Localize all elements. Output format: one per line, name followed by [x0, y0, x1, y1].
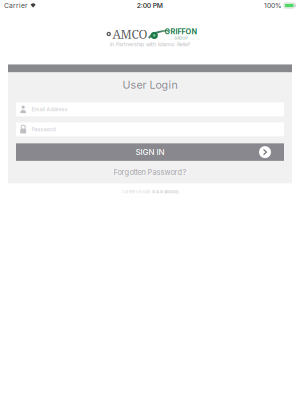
button[interactable]: Forgotten Password? [107, 167, 192, 178]
staticText: 0.0.0 (0000) [152, 189, 178, 194]
staticText: Email Address [31, 106, 67, 113]
staticText: Password [31, 126, 55, 133]
staticText: GROUP [174, 36, 187, 40]
staticText: SIGN IN [135, 147, 164, 157]
button[interactable]: SIGN IN [16, 143, 284, 161]
staticText: Forgotten Password? [113, 168, 186, 177]
staticText: AMCO [112, 26, 147, 42]
staticText: GRIFFON [164, 27, 197, 36]
staticText: User Login [122, 78, 177, 91]
staticText: Carrier [4, 1, 28, 10]
button[interactable]: Email Address [16, 102, 284, 116]
staticText: In Partnership with Islamic Relief [110, 41, 190, 47]
staticText: 100% [264, 1, 282, 10]
button[interactable]: Password [16, 122, 284, 136]
staticText: Current Version: [122, 189, 151, 194]
staticText: 2:00 PM [137, 1, 163, 10]
